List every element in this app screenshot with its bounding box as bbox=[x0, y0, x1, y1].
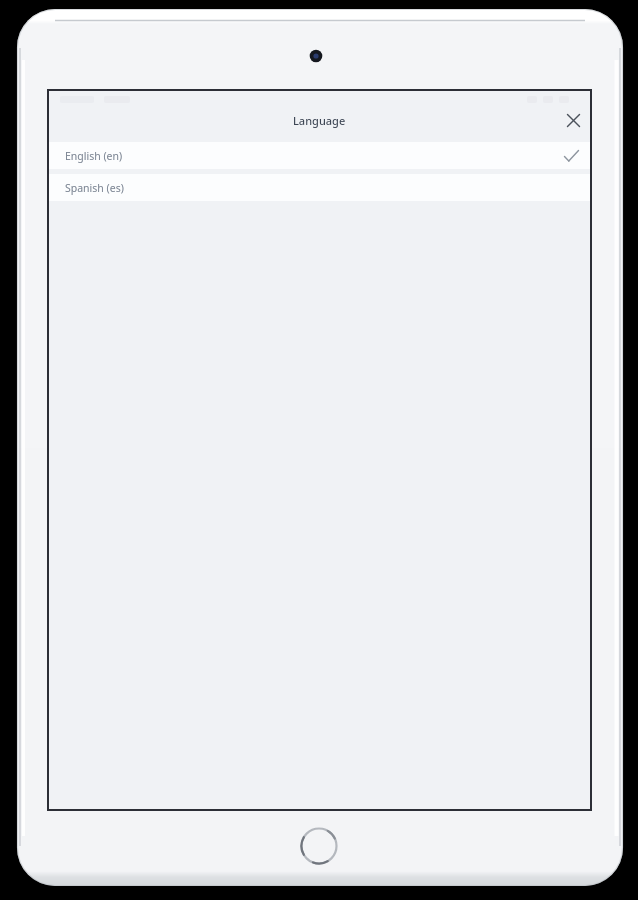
staticText: Language bbox=[293, 113, 346, 128]
staticText: English (en) bbox=[65, 149, 123, 163]
button[interactable]: Spanish (es) bbox=[49, 174, 590, 201]
button[interactable] bbox=[299, 826, 339, 866]
button[interactable]: English (en) bbox=[49, 142, 590, 169]
staticText: Spanish (es) bbox=[65, 181, 124, 195]
button[interactable] bbox=[559, 106, 587, 134]
